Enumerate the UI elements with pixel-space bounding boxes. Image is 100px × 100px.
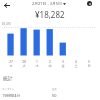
staticText: 2 xyxy=(49,60,51,64)
staticText: 28 xyxy=(22,60,26,64)
staticText: 19時間4分 xyxy=(2,93,21,98)
staticText: 金 xyxy=(61,64,65,68)
staticText: 1 xyxy=(36,60,38,64)
staticText: 統計 xyxy=(3,75,13,81)
staticText: ¥18,282 xyxy=(35,9,65,20)
staticText: 5 xyxy=(88,60,90,64)
staticText: 土 xyxy=(74,64,78,68)
button[interactable]: 2月27日 - 3月5日 xyxy=(32,1,66,6)
staticText: 日 xyxy=(87,64,91,68)
staticText: オンライン xyxy=(2,88,15,91)
staticText: 50 xyxy=(52,93,57,98)
staticText: 月 xyxy=(9,64,13,68)
staticText: 注文 xyxy=(52,88,57,91)
staticText: 水 xyxy=(35,64,39,68)
staticText: ¥4,476 xyxy=(2,22,11,26)
staticText: 2月27日 - 3月5日 xyxy=(32,1,62,6)
staticText: 27 xyxy=(9,60,13,64)
staticText: 木 xyxy=(48,64,52,68)
button[interactable]: Account xyxy=(87,1,92,6)
staticText: 3 xyxy=(62,60,64,64)
staticText: 4 xyxy=(75,60,77,64)
button[interactable]: Back xyxy=(1,0,12,11)
staticText: 火 xyxy=(22,64,26,68)
